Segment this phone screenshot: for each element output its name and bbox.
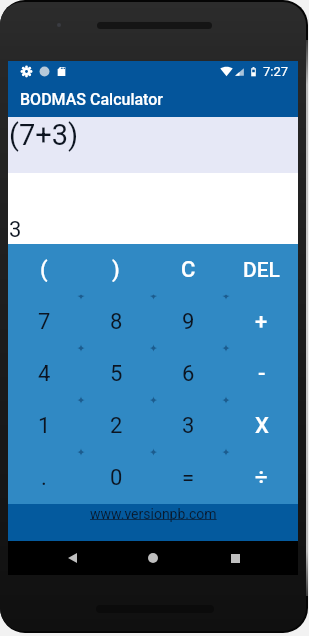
button[interactable]: . xyxy=(8,452,80,504)
staticText: 5 xyxy=(110,361,123,387)
button[interactable]: ( xyxy=(8,244,80,296)
staticText: + xyxy=(255,309,268,335)
staticText: 1 xyxy=(38,413,51,439)
staticText: (7+3) xyxy=(9,118,79,152)
staticText: BODMAS Calculator xyxy=(20,90,163,109)
staticText: 7:27 xyxy=(263,64,289,79)
button[interactable]: 2 xyxy=(80,400,152,452)
staticText: ) xyxy=(112,257,120,283)
staticText: 0 xyxy=(110,465,123,491)
button[interactable]: 0 xyxy=(80,452,152,504)
staticText: 9 xyxy=(182,309,195,335)
staticText: 3 xyxy=(182,413,195,439)
staticText: ( xyxy=(40,257,48,283)
button[interactable]: 9 xyxy=(152,296,225,348)
button[interactable]: = xyxy=(152,452,225,504)
staticText: ÷ xyxy=(255,465,268,491)
button[interactable]: 1 xyxy=(8,400,80,452)
button[interactable]: + xyxy=(225,296,298,348)
button[interactable]: Recent apps xyxy=(217,541,253,575)
button[interactable]: www.versionpb.com xyxy=(8,504,298,541)
button[interactable]: DEL xyxy=(225,244,298,296)
staticText: 7 xyxy=(38,309,51,335)
staticText: 6 xyxy=(182,361,195,387)
button[interactable]: ÷ xyxy=(225,452,298,504)
button[interactable]: C xyxy=(152,244,225,296)
button[interactable]: 3 xyxy=(152,400,225,452)
staticText: C xyxy=(181,257,196,283)
staticText: . xyxy=(41,465,47,491)
staticText: X xyxy=(255,413,269,439)
button[interactable]: 6 xyxy=(152,348,225,400)
staticText: 3 xyxy=(9,217,22,243)
button[interactable]: Back xyxy=(54,541,90,575)
button[interactable]: 5 xyxy=(80,348,152,400)
button[interactable]: ) xyxy=(80,244,152,296)
staticText: - xyxy=(258,361,266,387)
button[interactable]: 7 xyxy=(8,296,80,348)
button[interactable]: 8 xyxy=(80,296,152,348)
button[interactable]: X xyxy=(225,400,298,452)
button[interactable]: - xyxy=(225,348,298,400)
staticText: 4 xyxy=(38,361,51,387)
staticText: www.versionpb.com xyxy=(90,506,217,522)
staticText: 2 xyxy=(110,413,123,439)
staticText: = xyxy=(182,465,195,491)
staticText: 8 xyxy=(110,309,123,335)
button[interactable]: 4 xyxy=(8,348,80,400)
button[interactable]: Home xyxy=(135,541,171,575)
staticText: DEL xyxy=(243,258,280,283)
